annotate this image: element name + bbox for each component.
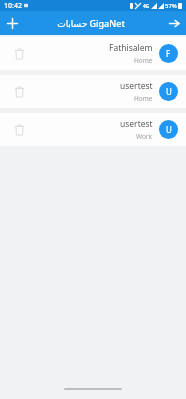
button[interactable]: Delete Fathisalem (8, 43, 30, 65)
staticText: Home (134, 94, 153, 103)
button[interactable]: Next (162, 11, 186, 35)
staticText: usertest (120, 118, 153, 130)
staticText: 57% (165, 2, 177, 10)
staticText: U (166, 124, 172, 135)
staticText: Home (134, 56, 153, 65)
staticText: Fathisalem (109, 42, 153, 54)
staticText: Work (136, 132, 153, 141)
staticText: usertest (120, 80, 153, 92)
staticText: 10:42 (4, 1, 22, 11)
button[interactable]: Delete usertest (0, 75, 186, 108)
button[interactable]: Delete usertest (0, 113, 186, 146)
button[interactable]: Delete usertest (8, 81, 30, 103)
button[interactable]: Delete Fathisalem (0, 37, 186, 70)
staticText: حسابات GigaNet (57, 17, 125, 29)
button[interactable]: Add account (0, 11, 24, 35)
staticText: U (166, 86, 172, 97)
staticText: 4G (143, 3, 150, 10)
button[interactable]: Delete usertest (8, 119, 30, 141)
staticText: F (166, 48, 171, 59)
